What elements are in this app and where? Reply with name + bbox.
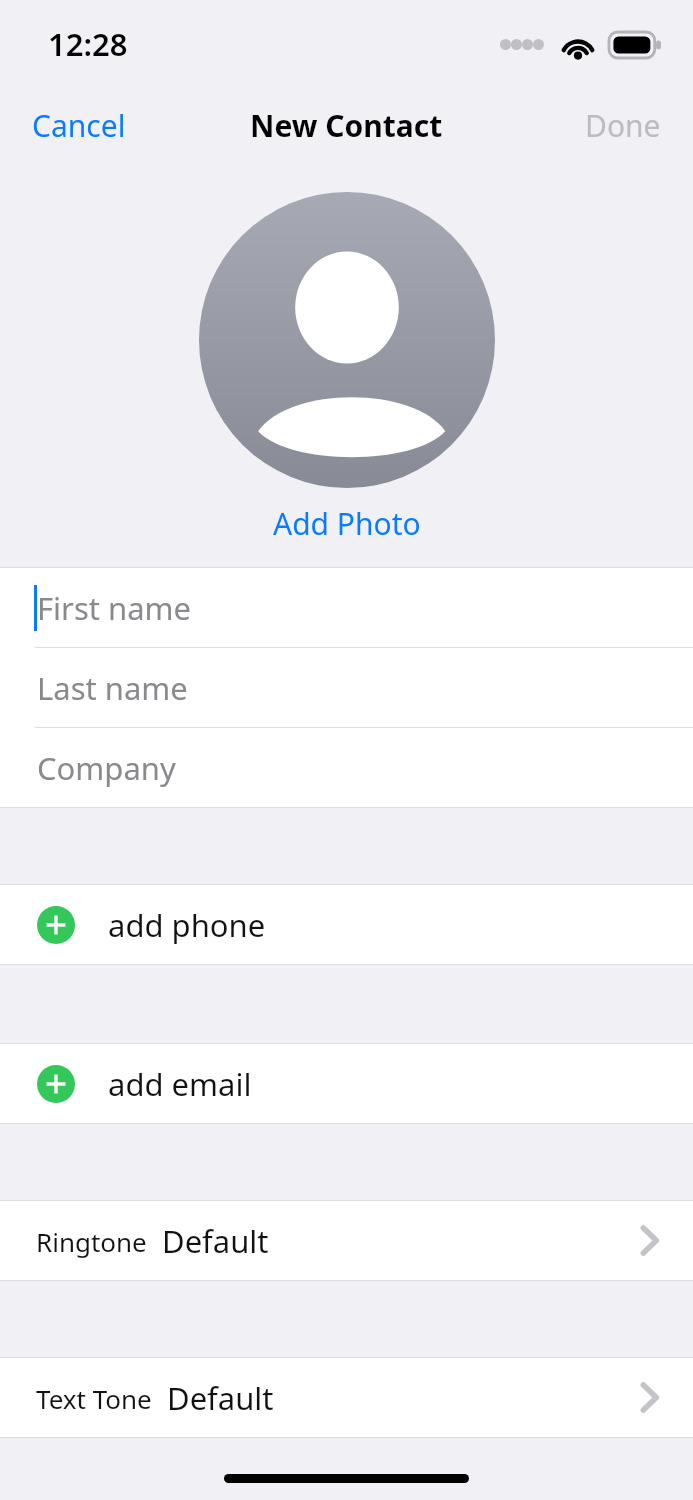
button[interactable]: Text Tone	[0, 1358, 693, 1437]
button[interactable]: Company	[0, 728, 693, 807]
button[interactable]: Add contact photo	[199, 192, 495, 488]
staticText: Last name	[37, 667, 188, 709]
staticText: Done	[585, 105, 661, 146]
staticText: Text Tone	[36, 1381, 152, 1416]
staticText: Cancel	[32, 105, 126, 146]
button[interactable]: Cancel	[0, 95, 158, 156]
staticText: Company	[37, 747, 176, 789]
button[interactable]: Add Photo	[251, 497, 443, 550]
button[interactable]: add phone	[0, 885, 693, 964]
button[interactable]: First name	[0, 568, 693, 647]
button[interactable]: Done	[553, 95, 693, 156]
button[interactable]: Ringtone	[0, 1201, 693, 1280]
staticText: 12:28	[48, 23, 128, 65]
button[interactable]: add email	[0, 1044, 693, 1123]
staticText: Default	[167, 1377, 274, 1419]
staticText: add phone	[108, 904, 266, 946]
staticText: add email	[108, 1063, 252, 1105]
button[interactable]: Last name	[0, 648, 693, 727]
staticText: New Contact	[250, 105, 443, 146]
staticText: Ringtone	[36, 1224, 147, 1259]
staticText: Default	[162, 1220, 269, 1262]
staticText: Add Photo	[273, 503, 421, 544]
staticText: First name	[37, 587, 192, 629]
